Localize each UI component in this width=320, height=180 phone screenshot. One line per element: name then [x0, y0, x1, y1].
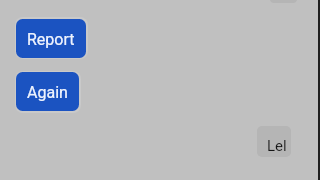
staticText: Lel: [267, 137, 287, 155]
staticText: Again: [27, 83, 68, 102]
button[interactable]: Again: [16, 72, 79, 111]
button[interactable]: Report: [16, 19, 86, 58]
button[interactable]: Lel: [257, 126, 291, 157]
staticText: Report: [27, 30, 75, 49]
